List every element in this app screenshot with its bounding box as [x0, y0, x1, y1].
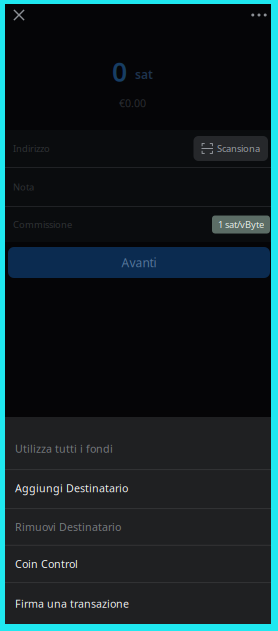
staticText: Nota	[13, 181, 34, 193]
staticText: Utilizza tutti i fondi	[15, 442, 113, 456]
button[interactable]: Avanti	[8, 247, 270, 278]
button[interactable]: Coin Control	[0, 546, 278, 582]
button[interactable]: More options	[246, 2, 272, 28]
staticText: Firma una transazione	[15, 596, 129, 611]
staticText: Avanti	[121, 254, 156, 270]
button[interactable]: Aggiungi Destinatario	[0, 470, 278, 508]
button[interactable]: Scansiona	[193, 136, 268, 161]
staticText: 1 sat/vByte	[218, 218, 264, 231]
staticText: Commissione	[13, 218, 72, 231]
staticText: Coin Control	[15, 557, 78, 571]
staticText: Rimuovi Destinatario	[15, 520, 121, 534]
staticText: 0	[112, 54, 127, 89]
button[interactable]: 1 sat/vByte	[212, 215, 270, 233]
staticText: Aggiungi Destinatario	[15, 481, 128, 495]
staticText: Indirizzo	[13, 142, 50, 155]
button[interactable]: Rimuovi Destinatario	[0, 509, 278, 545]
button[interactable]: Firma una transazione	[0, 583, 278, 631]
staticText: sat	[135, 66, 153, 82]
button[interactable]: Close	[6, 2, 32, 28]
staticText: €0.00	[119, 96, 146, 110]
button[interactable]: Utilizza tutti i fondi	[0, 417, 278, 469]
staticText: Scansiona	[217, 142, 260, 155]
